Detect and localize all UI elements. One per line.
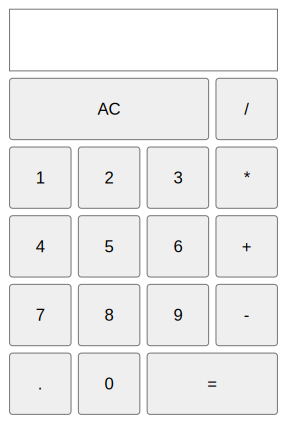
button[interactable]: + <box>215 215 278 277</box>
button[interactable]: AC <box>9 78 209 140</box>
staticText: 4 <box>36 237 45 256</box>
staticText: 1 <box>36 168 45 187</box>
button[interactable]: . <box>9 353 72 415</box>
staticText: / <box>244 100 249 118</box>
button[interactable]: / <box>215 78 278 140</box>
staticText: * <box>244 168 250 187</box>
staticText: = <box>207 374 217 393</box>
button[interactable]: 7 <box>9 284 72 346</box>
button[interactable]: 8 <box>78 284 140 346</box>
staticText: + <box>242 237 252 256</box>
staticText: . <box>38 374 43 393</box>
button[interactable]: - <box>215 284 278 346</box>
button[interactable]: 5 <box>78 215 140 277</box>
button[interactable]: 4 <box>9 215 72 277</box>
staticText: 6 <box>173 237 182 256</box>
staticText: - <box>244 306 250 324</box>
button[interactable]: 0 <box>78 353 140 415</box>
button[interactable]: 9 <box>147 284 209 346</box>
staticText: 3 <box>173 168 182 187</box>
button[interactable]: 3 <box>147 146 209 209</box>
staticText: 9 <box>173 306 182 324</box>
staticText: 8 <box>105 306 114 324</box>
button[interactable]: 6 <box>147 215 209 277</box>
button[interactable]: * <box>215 146 278 209</box>
button[interactable]: 1 <box>9 146 72 209</box>
staticText: AC <box>98 100 121 118</box>
staticText: 5 <box>105 237 114 256</box>
button[interactable]: 2 <box>78 146 140 209</box>
staticText: 7 <box>36 306 45 324</box>
staticText: 2 <box>105 168 114 187</box>
staticText: 0 <box>105 374 114 393</box>
button[interactable]: = <box>147 353 278 415</box>
